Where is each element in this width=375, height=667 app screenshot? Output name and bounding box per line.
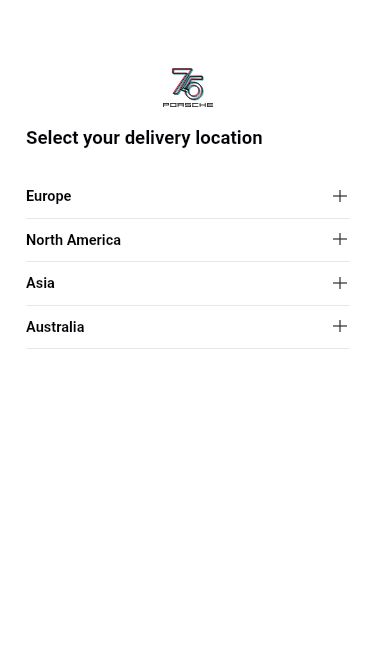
button[interactable]: North America [0,219,375,262]
staticText: Europe [26,188,72,205]
staticText: Asia [26,275,55,292]
staticText: Select your delivery location [26,127,263,149]
other: Expand Asia [329,273,351,295]
button[interactable]: Europe [0,175,375,219]
other: Expand Australia [329,316,351,338]
other: Expand Europe [329,186,351,208]
staticText: Australia [26,319,85,336]
button[interactable]: Australia [0,306,375,349]
staticText: North America [26,232,122,249]
button[interactable]: Asia [0,262,375,306]
other: Expand North America [329,229,351,251]
